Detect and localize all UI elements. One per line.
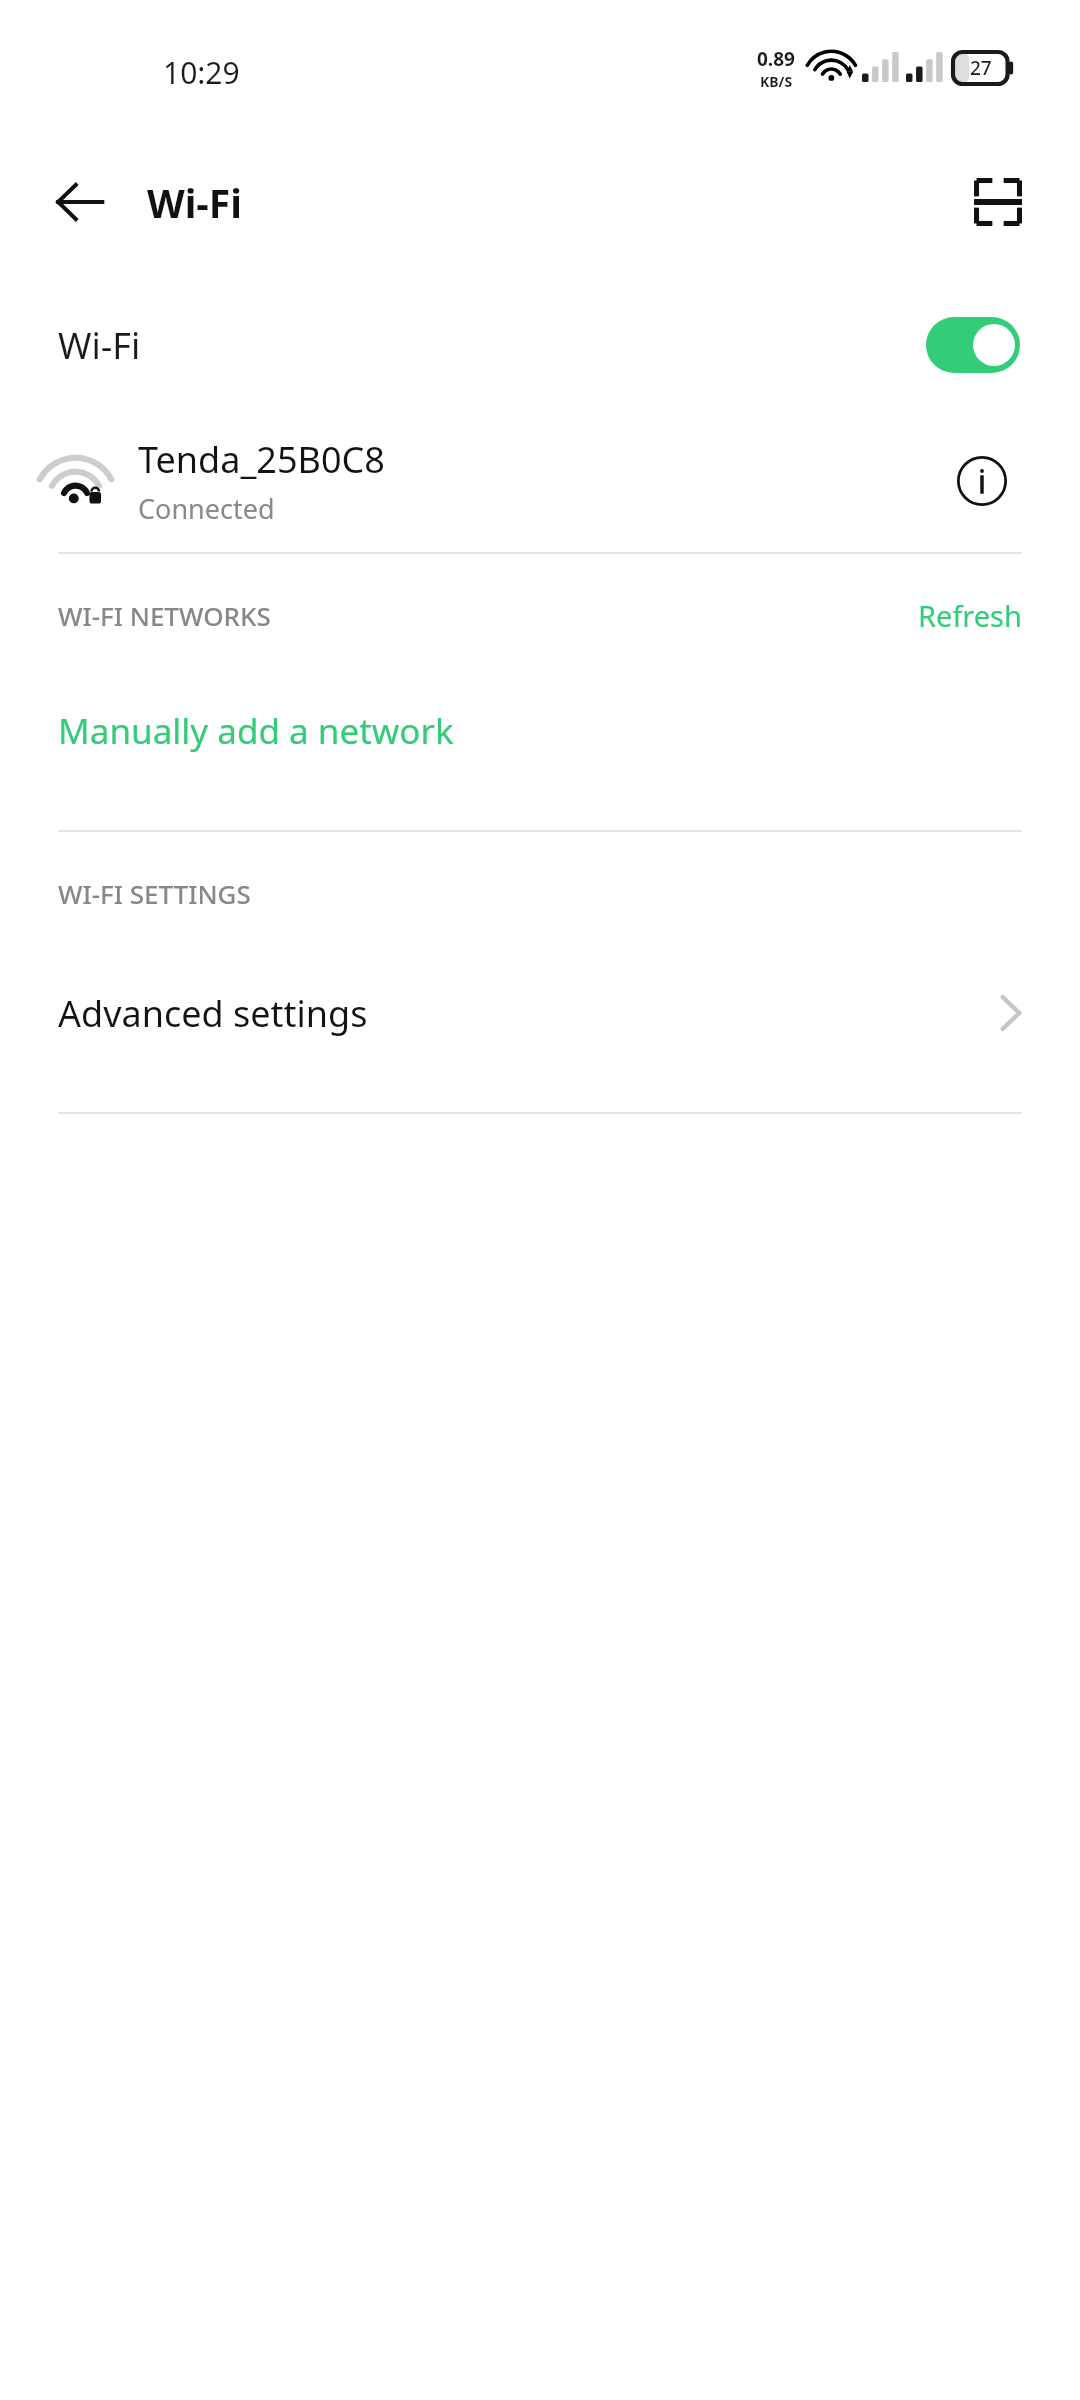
staticText: WI-FI NETWORKS xyxy=(58,598,271,633)
staticText: Wi-Fi xyxy=(58,321,141,370)
staticText: Advanced settings xyxy=(58,989,368,1038)
button[interactable]: Refresh xyxy=(918,596,1022,635)
staticText: 27 xyxy=(970,55,992,81)
staticText: Wi-Fi xyxy=(147,176,242,229)
button[interactable]: Back xyxy=(34,156,126,248)
button[interactable]: Wi-Fi toggle, on xyxy=(926,317,1020,373)
staticText: Connected xyxy=(138,490,275,527)
staticText: Manually add a network xyxy=(58,707,454,755)
staticText: 10:29 xyxy=(163,52,240,93)
button[interactable]: Scan QR code xyxy=(952,156,1044,248)
staticText: Tenda_25B0C8 xyxy=(138,435,385,484)
button[interactable]: Advanced settings xyxy=(0,954,1080,1072)
button[interactable]: Network details xyxy=(940,439,1024,523)
staticText: 0.89 xyxy=(757,46,795,72)
staticText: WI-FI SETTINGS xyxy=(58,876,251,911)
staticText: Refresh xyxy=(918,596,1022,635)
button[interactable]: Wi-Fi xyxy=(0,280,1080,410)
button[interactable]: Tenda_25B0C8 xyxy=(0,410,1080,552)
button[interactable]: Manually add a network xyxy=(0,676,1080,786)
staticText: KB/S xyxy=(760,72,793,91)
